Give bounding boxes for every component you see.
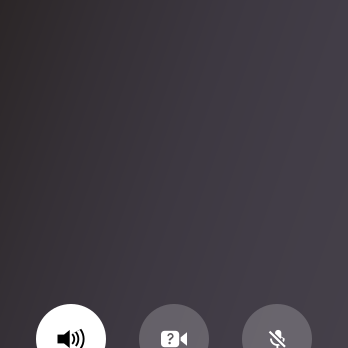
button[interactable]: Speaker: [36, 304, 106, 348]
button[interactable]: Mute: [242, 304, 312, 348]
button[interactable]: Video: [139, 304, 209, 348]
